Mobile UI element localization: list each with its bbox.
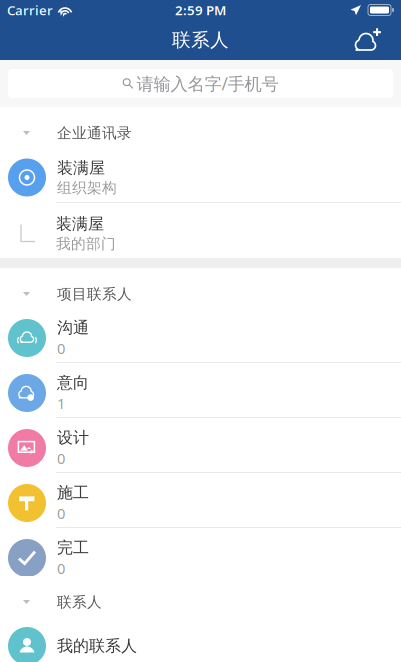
staticText: 装满屋	[57, 158, 105, 178]
staticText: 我的部门	[56, 235, 116, 253]
staticText: 施工	[57, 483, 89, 503]
staticText: 意向	[57, 373, 89, 393]
button[interactable]: 我的联系人	[0, 616, 401, 662]
staticText: 项目联系人	[57, 285, 132, 303]
button[interactable]: 意向	[0, 363, 401, 417]
staticText: 我的联系人	[57, 636, 137, 656]
button[interactable]: 设计	[0, 418, 401, 472]
staticText: 组织架构	[57, 179, 117, 197]
staticText: 1	[57, 394, 65, 413]
staticText: Carrier	[7, 1, 53, 19]
button[interactable]: 沟通	[0, 308, 401, 362]
staticText: 请输入名字/手机号	[136, 72, 278, 95]
staticText: 沟通	[57, 318, 89, 338]
button[interactable]: 施工	[0, 473, 401, 527]
staticText: 2:59 PM	[175, 1, 226, 19]
staticText: 联系人	[172, 28, 229, 51]
staticText: 设计	[57, 428, 89, 448]
staticText: 0	[57, 559, 65, 578]
button[interactable]: 装满屋	[0, 203, 401, 258]
staticText: 0	[57, 449, 65, 468]
button[interactable]: Add contact	[343, 20, 401, 60]
staticText: 联系人	[57, 593, 102, 611]
staticText: 装满屋	[56, 214, 104, 234]
staticText: 0	[57, 504, 65, 523]
staticText: 企业通讯录	[57, 124, 132, 142]
button[interactable]: 装满屋	[0, 147, 401, 202]
staticText: 完工	[57, 538, 89, 558]
staticText: 0	[57, 339, 65, 358]
button[interactable]: 完工	[0, 528, 401, 582]
